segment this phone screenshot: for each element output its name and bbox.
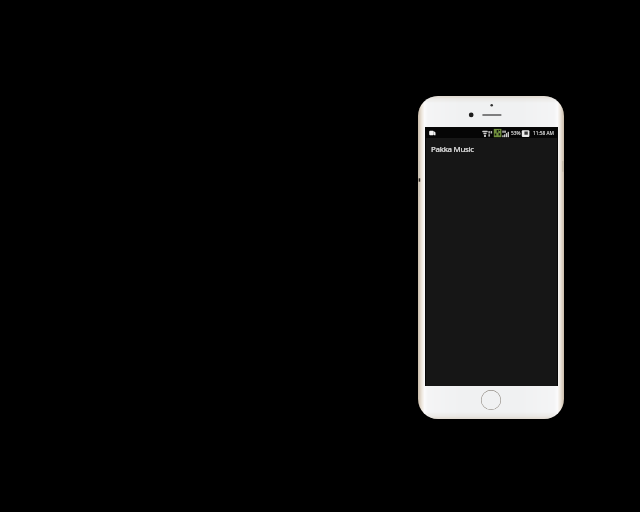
button[interactable]: Volume xyxy=(418,161,420,197)
staticText: 11:58 AM xyxy=(533,130,554,137)
staticText: Pakka Music xyxy=(431,144,474,155)
staticText: 53% xyxy=(511,130,521,137)
button[interactable]: Pakka Music xyxy=(426,138,557,162)
button[interactable]: Home xyxy=(481,390,501,410)
